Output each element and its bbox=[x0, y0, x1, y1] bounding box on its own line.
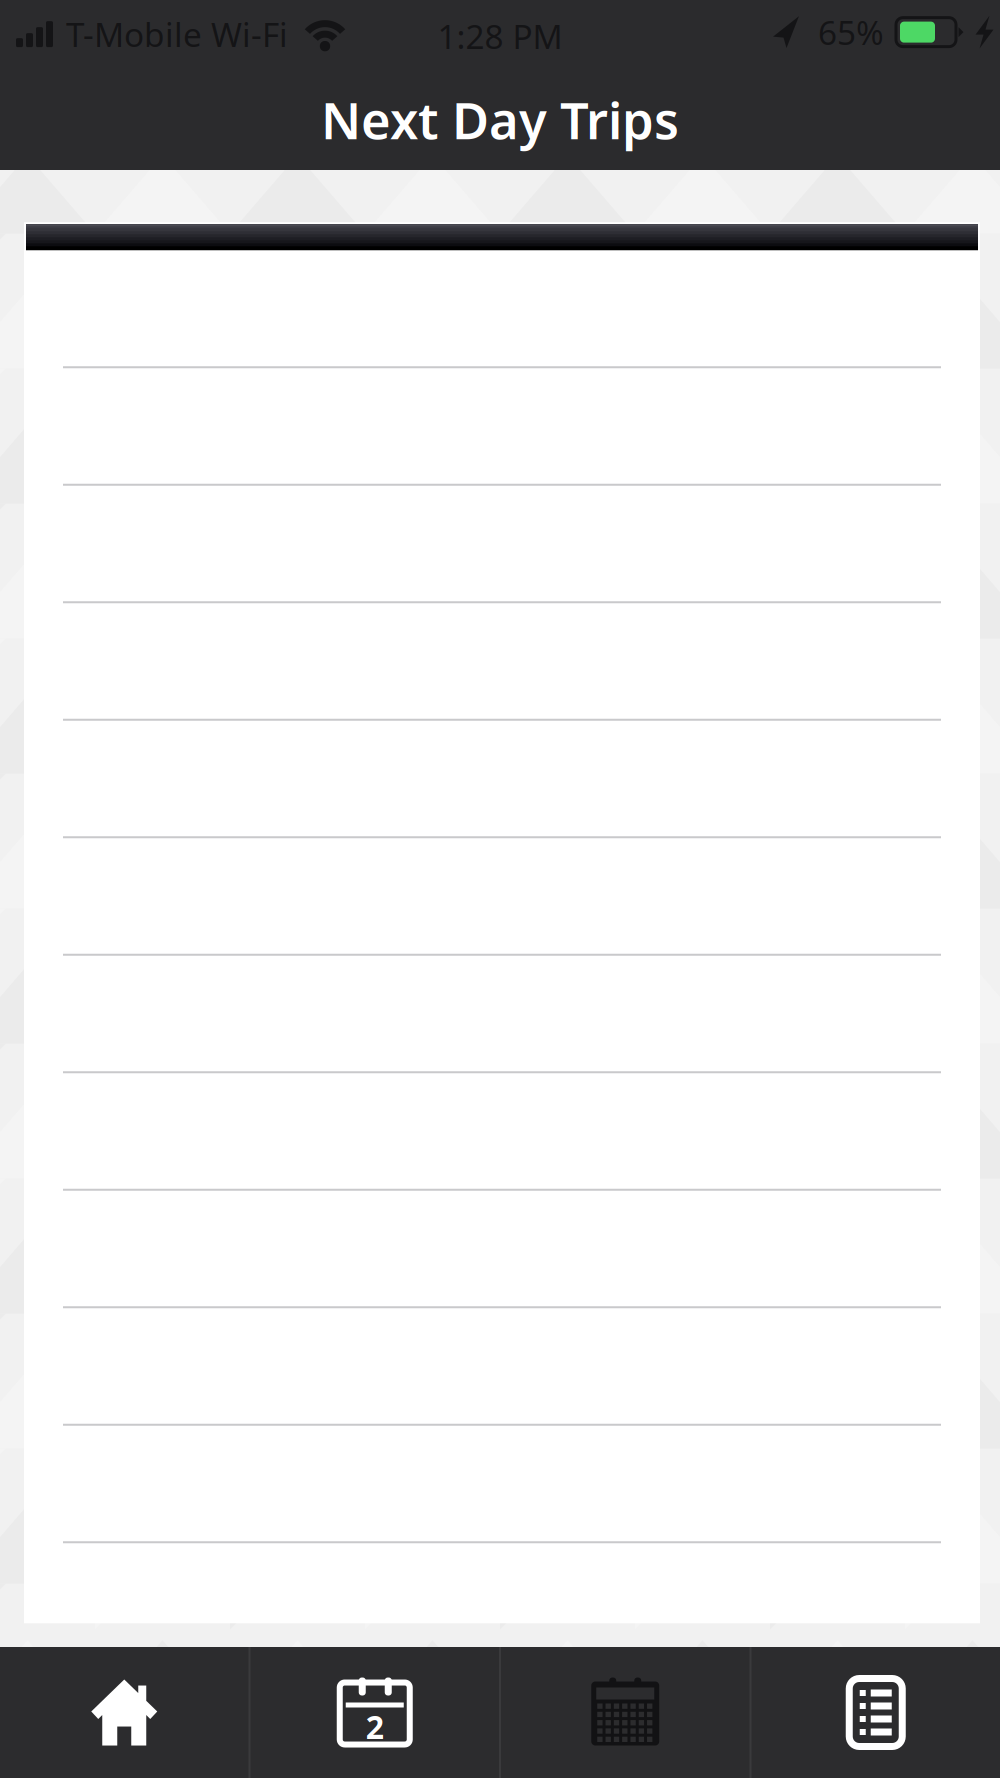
button[interactable]: Calendar bbox=[501, 1647, 749, 1778]
staticText: Next Day Trips bbox=[321, 86, 679, 153]
staticText: T-Mobile Wi-Fi bbox=[66, 12, 288, 56]
staticText: 1:28 PM bbox=[437, 14, 562, 58]
button[interactable]: Next Day Trips bbox=[250, 1647, 499, 1778]
staticText: 2 bbox=[366, 1705, 384, 1748]
button[interactable]: Home bbox=[0, 1647, 248, 1778]
staticText: 65% bbox=[818, 10, 884, 54]
button[interactable]: Trip List bbox=[751, 1647, 1000, 1778]
